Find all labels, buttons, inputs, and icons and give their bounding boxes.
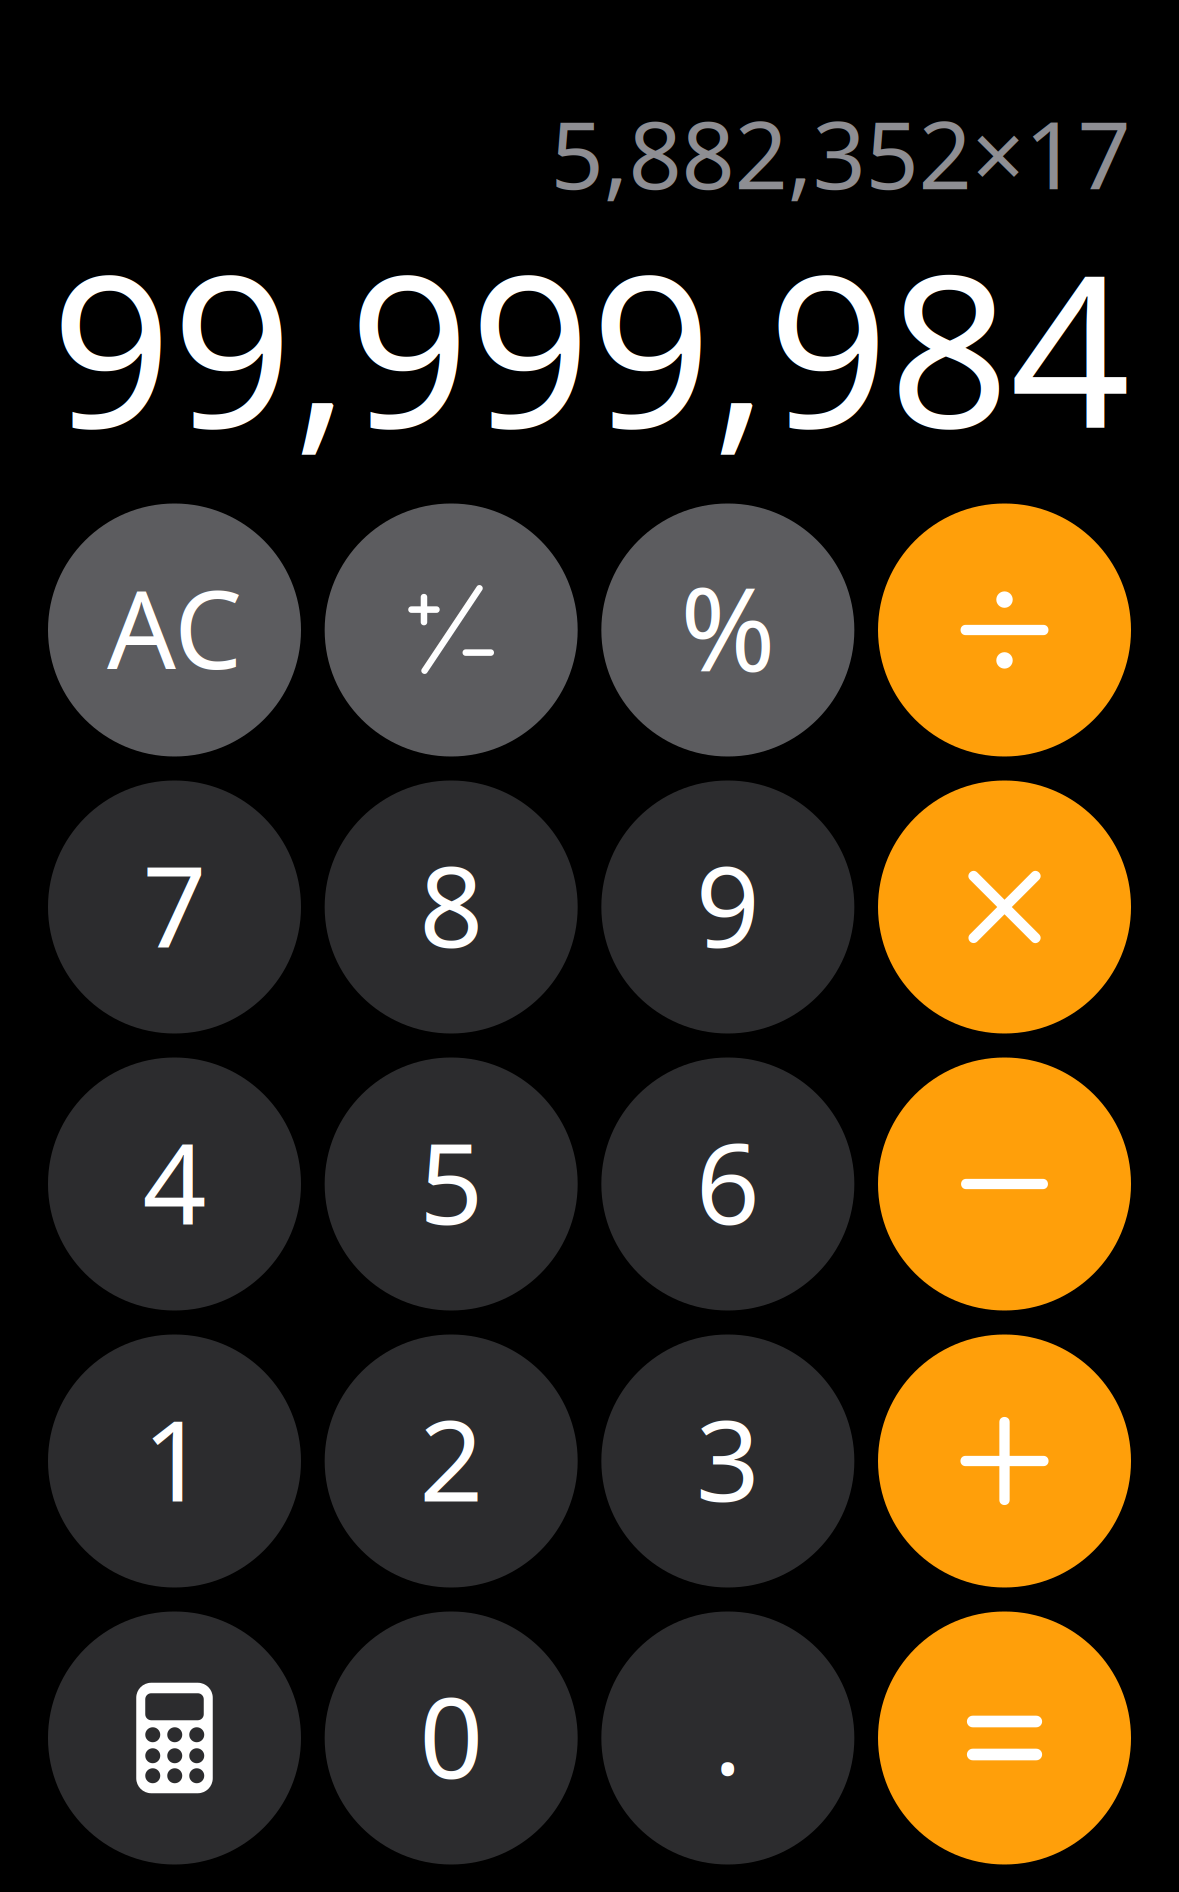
button[interactable]: AC — [48, 503, 301, 756]
button[interactable]: Multiply — [878, 780, 1131, 1033]
staticText: % — [680, 551, 775, 703]
button[interactable]: 8 — [325, 780, 578, 1033]
staticText: 5 — [419, 1107, 483, 1255]
staticText: 99,999,984 — [51, 206, 1131, 486]
button[interactable]: Positive Negative — [325, 503, 578, 756]
button[interactable]: Add — [878, 1334, 1131, 1587]
staticText: 5,882,352×17 — [550, 91, 1130, 215]
button[interactable]: 6 — [601, 1057, 854, 1310]
staticText: 6 — [696, 1107, 760, 1255]
button[interactable]: 9 — [601, 780, 854, 1033]
button[interactable]: . — [601, 1611, 854, 1864]
button[interactable]: Divide — [878, 503, 1131, 756]
button[interactable]: % — [601, 503, 854, 756]
button[interactable]: Subtract — [878, 1057, 1131, 1310]
staticText: 9 — [696, 830, 760, 978]
button[interactable]: 7 — [48, 780, 301, 1033]
staticText: 7 — [142, 830, 206, 978]
button[interactable]: Equals — [878, 1611, 1131, 1864]
staticText: 3 — [696, 1384, 760, 1532]
button[interactable]: 3 — [601, 1334, 854, 1587]
button[interactable]: Calculator — [48, 1611, 301, 1864]
button[interactable]: 4 — [48, 1057, 301, 1310]
button[interactable]: 5 — [325, 1057, 578, 1310]
staticText: 4 — [142, 1107, 206, 1255]
staticText: 8 — [419, 830, 483, 978]
staticText: 1 — [142, 1384, 206, 1532]
staticText: 0 — [419, 1661, 483, 1809]
staticText: 2 — [419, 1384, 483, 1532]
staticText: AC — [107, 555, 242, 699]
button[interactable]: 1 — [48, 1334, 301, 1587]
button[interactable]: 2 — [325, 1334, 578, 1587]
staticText: . — [714, 1666, 742, 1804]
button[interactable]: 0 — [325, 1611, 578, 1864]
